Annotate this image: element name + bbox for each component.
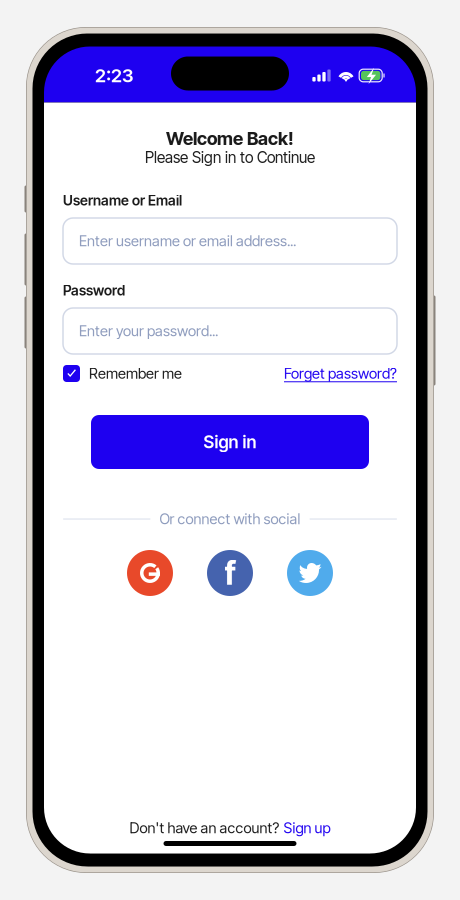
staticText: Please Sign in to Continue [145,148,315,167]
button[interactable]: Sign up [283,821,330,835]
staticText: Enter your password... [79,322,218,340]
button[interactable]: Sign in [91,415,369,469]
staticText: f [224,554,235,592]
staticText: Sign in [203,431,256,452]
staticText: Remember me [89,365,182,382]
button[interactable]: Sign in with Google [127,550,173,596]
staticText: Sign up [283,819,330,837]
staticText: Password [63,282,125,299]
staticText: Enter username or email address... [79,232,296,250]
staticText: Don't have an account? [129,819,279,837]
button[interactable]: Remember me [63,365,182,382]
staticText: 2:23 [95,64,133,87]
staticText: Forget password? [284,365,397,382]
staticText: Or connect with social [159,510,300,528]
staticText: Welcome Back! [166,128,294,149]
button[interactable]: Sign in with Facebook [207,550,253,596]
staticText: Username or Email [63,192,182,209]
button[interactable]: Forget password? [284,365,397,381]
button[interactable]: Sign in with Twitter [287,550,333,596]
